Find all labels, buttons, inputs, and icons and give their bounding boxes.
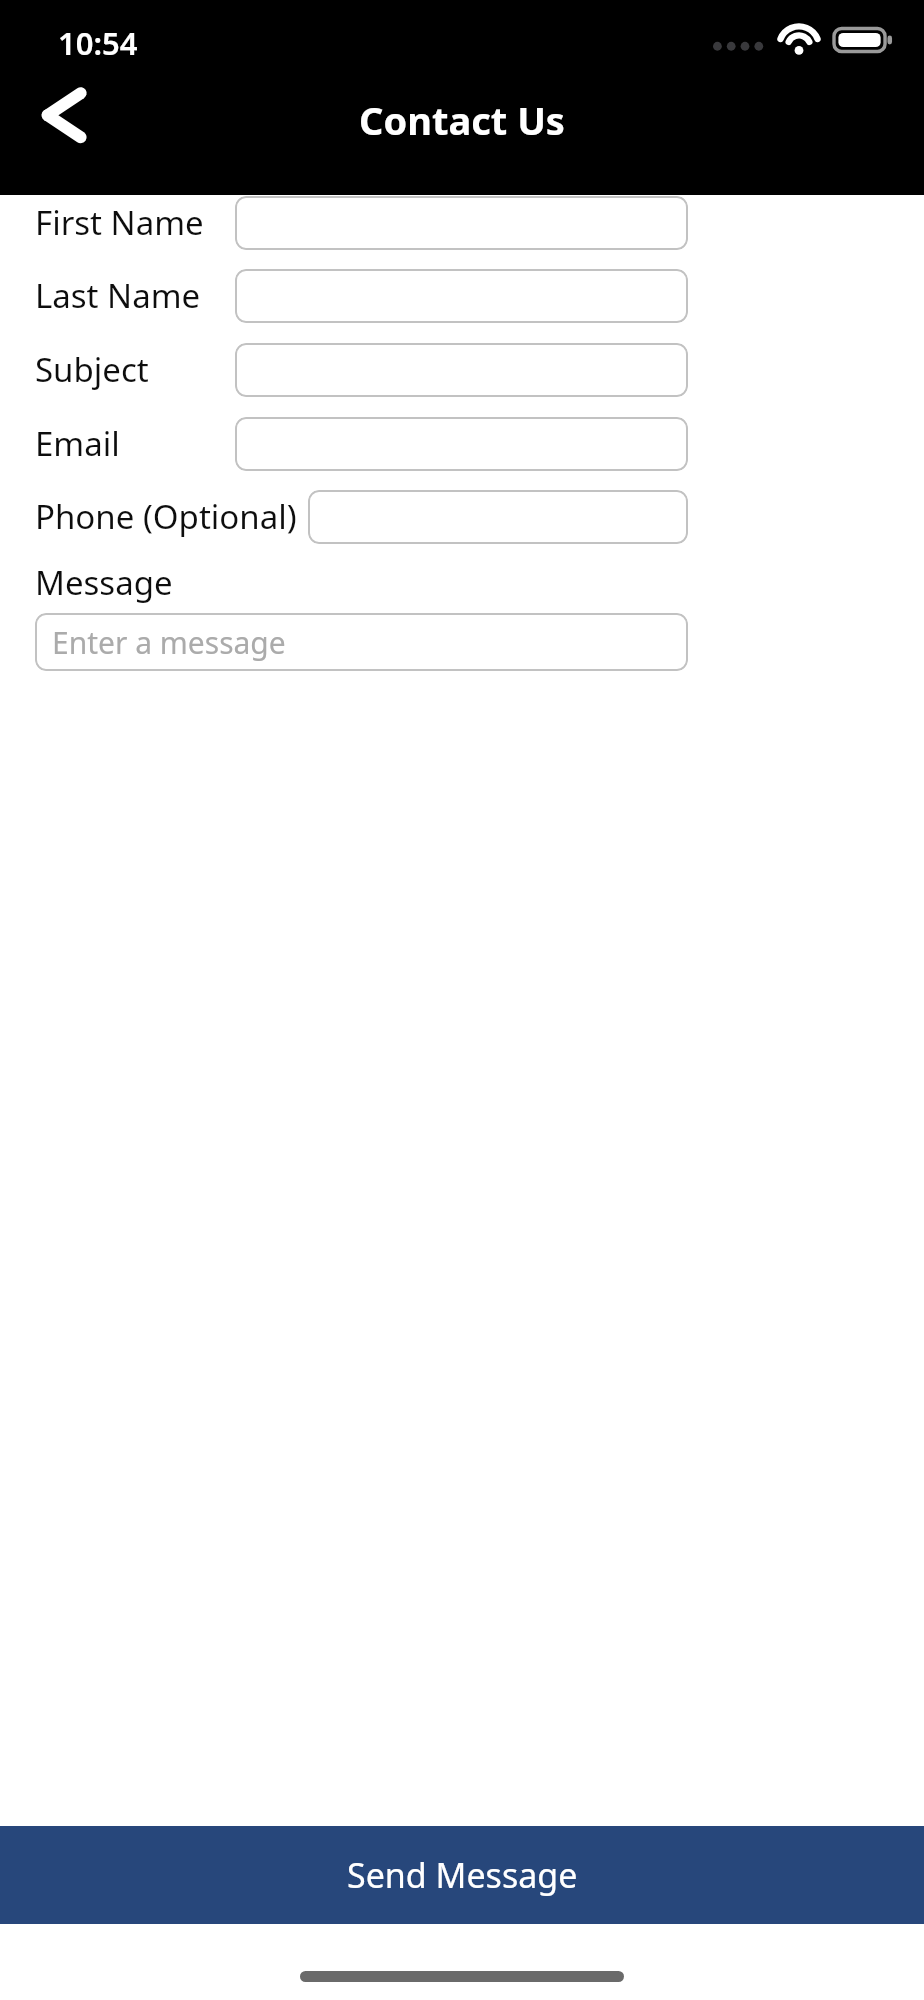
button[interactable] <box>235 269 688 323</box>
staticText: Enter a message <box>52 622 286 663</box>
staticText: Last Name <box>35 273 201 318</box>
button[interactable]: Send Message <box>0 1826 924 1924</box>
button[interactable] <box>235 196 688 250</box>
staticText: Contact Us <box>359 94 565 146</box>
staticText: Subject <box>35 347 149 392</box>
button[interactable] <box>235 417 688 471</box>
button[interactable]: Enter a message <box>35 613 688 671</box>
staticText: Send Message <box>347 1852 578 1898</box>
staticText: Email <box>35 421 120 466</box>
staticText: First Name <box>35 200 204 245</box>
staticText: Message <box>35 560 173 605</box>
button[interactable]: Back <box>16 75 98 157</box>
button[interactable] <box>308 490 688 544</box>
button[interactable] <box>235 343 688 397</box>
staticText: 10:54 <box>58 22 138 64</box>
staticText: Phone (Optional) <box>35 494 297 539</box>
